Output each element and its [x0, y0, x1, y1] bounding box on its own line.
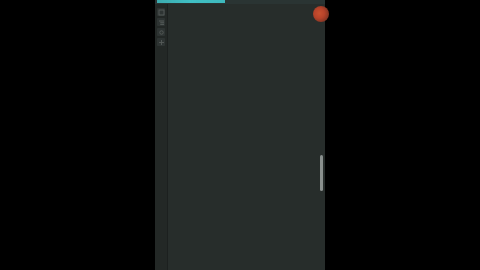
button[interactable]: Settings	[157, 38, 165, 46]
button[interactable]: Scroll position	[320, 155, 323, 191]
button[interactable]: Attributes	[157, 28, 165, 36]
button[interactable]: Account avatar	[313, 6, 329, 22]
button[interactable]: Component tree	[157, 18, 165, 26]
button[interactable]: Layout inspector	[157, 8, 165, 16]
